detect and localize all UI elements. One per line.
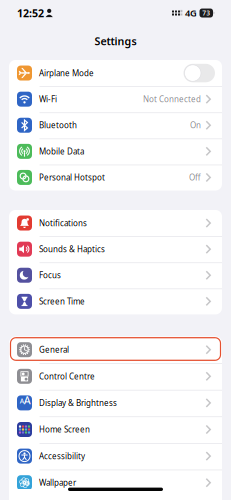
button[interactable]: Personal Hotspot: [9, 164, 222, 190]
staticText: 12:52: [17, 6, 44, 20]
staticText: 4G: [185, 7, 197, 19]
button[interactable]: Sounds & Haptics: [9, 236, 222, 262]
button[interactable]: Control Centre: [9, 363, 222, 390]
staticText: Notifications: [39, 218, 87, 228]
button[interactable]: Bluetooth: [9, 112, 222, 138]
button[interactable]: Home Screen: [9, 416, 222, 443]
button[interactable]: Airplane Mode: [9, 60, 222, 86]
staticText: A: [24, 393, 31, 407]
staticText: Display & Brightness: [39, 398, 117, 408]
staticText: Off: [189, 172, 201, 183]
button[interactable]: General: [9, 336, 222, 363]
button[interactable]: Accessibility: [9, 443, 222, 469]
staticText: Airplane Mode: [39, 68, 94, 78]
staticText: Bluetooth: [39, 120, 77, 130]
staticText: Wallpaper: [39, 477, 76, 488]
staticText: 73: [202, 9, 210, 17]
staticText: Not Connected: [143, 94, 201, 104]
staticText: On: [190, 120, 201, 130]
button[interactable]: Wi-Fi: [9, 86, 222, 112]
staticText: Settings: [94, 34, 136, 48]
button[interactable]: Screen Time: [9, 288, 222, 314]
button[interactable]: Wallpaper: [9, 469, 222, 496]
button[interactable]: Mobile Data: [9, 138, 222, 164]
staticText: Screen Time: [39, 296, 85, 307]
staticText: General: [39, 344, 69, 355]
staticText: A: [20, 396, 24, 405]
staticText: Focus: [39, 270, 61, 280]
staticText: Sounds & Haptics: [39, 244, 105, 254]
staticText: Accessibility: [39, 451, 85, 461]
staticText: Control Centre: [39, 371, 95, 382]
staticText: Wi-Fi: [39, 94, 57, 104]
staticText: Mobile Data: [39, 146, 84, 157]
staticText: Personal Hotspot: [39, 172, 105, 183]
button[interactable]: Focus: [9, 262, 222, 288]
button[interactable]: A: [9, 390, 222, 416]
button[interactable]: Notifications: [9, 210, 222, 236]
staticText: Home Screen: [39, 424, 90, 435]
